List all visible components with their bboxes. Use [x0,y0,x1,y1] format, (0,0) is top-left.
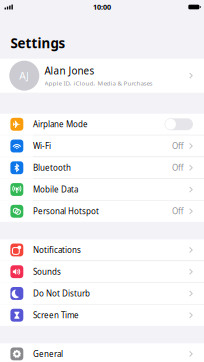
button[interactable]: Mobile Data [0,179,204,200]
staticText: Sounds [33,266,61,277]
button[interactable]: General [0,343,204,362]
staticText: Airplane Mode [33,119,88,130]
staticText: Wi-Fi [33,141,51,151]
staticText: AJ [19,69,29,83]
button[interactable]: Notifications [0,239,204,261]
button[interactable]: Screen Time [0,305,204,326]
staticText: Personal Hotspot [33,206,99,217]
staticText: Settings [11,34,66,52]
button[interactable]: Do Not Disturb [0,283,204,304]
staticText: Off [172,206,184,217]
staticText: Off [172,141,184,151]
staticText: General [33,348,63,359]
button[interactable]: AJ [0,59,204,93]
button[interactable]: Wi-Fi [0,135,204,157]
button[interactable]: Sounds [0,261,204,282]
staticText: Notifications [33,244,81,255]
staticText: Bluetooth [33,162,71,173]
staticText: Mobile Data [33,184,78,195]
button[interactable]: Personal Hotspot [0,201,204,222]
button[interactable]: Bluetooth [0,157,204,178]
staticText: Screen Time [33,310,79,321]
button[interactable]: Airplane Mode [0,114,204,135]
staticText: Alan Jones [44,64,94,77]
staticText: Do Not Disturb [33,288,90,299]
staticText: Apple ID, iCloud, Media & Purchases [44,79,152,87]
staticText: 10:00 [93,2,111,12]
staticText: Off [172,162,184,173]
